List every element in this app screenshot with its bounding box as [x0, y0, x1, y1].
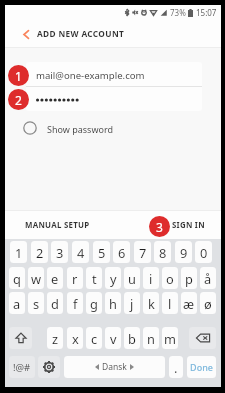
button[interactable]: h [105, 292, 121, 314]
staticText: SIGN IN [172, 220, 205, 231]
staticText: 7 [139, 244, 147, 261]
staticText: e [51, 270, 59, 287]
button[interactable]: 9 [175, 241, 192, 263]
button[interactable]: q [9, 267, 25, 289]
button[interactable]: 4 [72, 241, 89, 263]
staticText: m [164, 330, 176, 347]
staticText: n [147, 330, 155, 347]
button[interactable]: k [143, 292, 159, 314]
staticText: d [51, 295, 59, 312]
staticText: o [166, 270, 174, 287]
button[interactable]: SIGN IN [172, 211, 205, 239]
button[interactable]: 3 [51, 241, 68, 263]
staticText: . [174, 359, 178, 376]
button[interactable]: Backspace [189, 327, 216, 349]
staticText: k [148, 295, 155, 312]
button[interactable]: b [124, 327, 140, 349]
staticText: 15:07 [196, 7, 217, 18]
staticText: h [109, 295, 117, 312]
button[interactable]: x [67, 327, 83, 349]
button[interactable]: ø [200, 292, 216, 314]
button[interactable]: v [105, 327, 121, 349]
button[interactable]: MANUAL SETUP [25, 211, 90, 239]
staticText: 0 [200, 244, 208, 261]
staticText: u [128, 270, 136, 287]
staticText: g [90, 295, 98, 312]
button[interactable]: l [162, 292, 178, 314]
staticText: mail@one-example.com [36, 69, 145, 82]
button[interactable]: Done [187, 356, 216, 378]
staticText: ADD NEW ACCOUNT [37, 28, 125, 39]
button[interactable]: . [169, 356, 183, 378]
staticText: å [204, 270, 212, 287]
button[interactable]: c [86, 327, 102, 349]
staticText: y [110, 270, 117, 287]
staticText: v [110, 330, 117, 347]
button[interactable] [26, 87, 202, 111]
button[interactable]: o [162, 267, 178, 289]
staticText: b [128, 330, 136, 347]
button[interactable]: n [143, 327, 159, 349]
staticText: w [31, 270, 42, 287]
button[interactable]: 2 [31, 241, 48, 263]
staticText: c [91, 330, 98, 347]
button[interactable]: r [67, 267, 83, 289]
staticText: 4 [77, 244, 85, 261]
button[interactable]: i [143, 267, 159, 289]
button[interactable]: 0 [195, 241, 212, 263]
button[interactable]: mail@one-example.com [26, 62, 202, 86]
button[interactable]: g [86, 292, 102, 314]
button[interactable]: m [162, 327, 178, 349]
button[interactable]: å [200, 267, 216, 289]
staticText: x [72, 330, 79, 347]
button[interactable]: u [124, 267, 140, 289]
button[interactable]: e [47, 267, 63, 289]
staticText: 73% [170, 7, 186, 18]
button[interactable]: Settings [38, 356, 60, 378]
button[interactable]: j [124, 292, 140, 314]
staticText: 1 [15, 244, 23, 261]
staticText: r [72, 270, 78, 287]
staticText: æ [183, 295, 195, 312]
staticText: f [73, 295, 78, 312]
staticText: 6 [118, 244, 126, 261]
button[interactable]: 7 [134, 241, 151, 263]
staticText: 3 [56, 244, 64, 261]
button[interactable]: !@# [9, 356, 35, 378]
staticText: 9 [180, 244, 188, 261]
staticText: 2 [15, 92, 22, 108]
button[interactable]: 8 [154, 241, 171, 263]
staticText: 8 [159, 244, 167, 261]
button[interactable]: 5 [93, 241, 110, 263]
button[interactable]: a [9, 292, 25, 314]
staticText: t [92, 270, 97, 287]
staticText: p [185, 270, 193, 287]
button[interactable]: 1 [10, 241, 27, 263]
button[interactable]: d [47, 292, 63, 314]
staticText: 5 [98, 244, 106, 261]
staticText: a [13, 295, 21, 312]
button[interactable]: w [28, 267, 44, 289]
staticText: Show password [47, 123, 113, 135]
button[interactable]: Dansk [64, 356, 165, 378]
button[interactable]: t [86, 267, 102, 289]
button[interactable]: Shift [9, 327, 32, 349]
button[interactable]: s [28, 292, 44, 314]
staticText: Dansk [102, 361, 127, 373]
staticText: i [149, 270, 153, 287]
button[interactable]: p [181, 267, 197, 289]
staticText: s [33, 295, 40, 312]
staticText: ø [204, 295, 212, 312]
button[interactable]: z [47, 327, 63, 349]
button[interactable]: Back [13, 20, 39, 48]
staticText: Done [190, 361, 213, 373]
button[interactable]: æ [181, 292, 197, 314]
button[interactable]: Show password [23, 118, 113, 138]
staticText: 2 [36, 244, 44, 261]
staticText: q [13, 270, 21, 287]
staticText: 3 [156, 219, 163, 235]
button[interactable]: 6 [113, 241, 130, 263]
button[interactable]: y [105, 267, 121, 289]
staticText: j [130, 295, 134, 312]
button[interactable]: f [67, 292, 83, 314]
